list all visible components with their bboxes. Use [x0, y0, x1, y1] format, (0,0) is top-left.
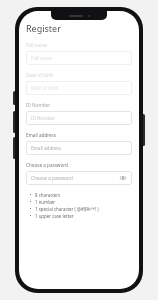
button[interactable]: Choose a password — [26, 171, 132, 185]
staticText: ID Number — [31, 115, 127, 121]
staticText: 8 characters — [35, 192, 61, 198]
button[interactable]: Date of birth — [26, 81, 132, 95]
staticText: 1 upper case letter — [35, 213, 74, 219]
staticText: 1 special character ( @#$%^*! ) — [35, 206, 99, 212]
staticText: Email address — [26, 132, 57, 138]
staticText: Choose a password — [26, 162, 68, 168]
staticText: Register — [26, 22, 61, 34]
staticText: Date of birth — [31, 85, 127, 91]
staticText: Full name — [31, 55, 127, 61]
button[interactable]: Full name — [26, 51, 132, 65]
button[interactable]: ID Number — [26, 111, 132, 125]
staticText: Full name — [26, 42, 48, 48]
staticText: Email address — [31, 145, 127, 151]
button[interactable]: Email address — [26, 141, 132, 155]
staticText: 1 number — [35, 199, 56, 205]
staticText: ID Number — [26, 102, 51, 108]
staticText: Date of birth — [26, 72, 54, 78]
button[interactable]: Show password — [119, 174, 127, 182]
staticText: Choose a password — [31, 175, 119, 181]
